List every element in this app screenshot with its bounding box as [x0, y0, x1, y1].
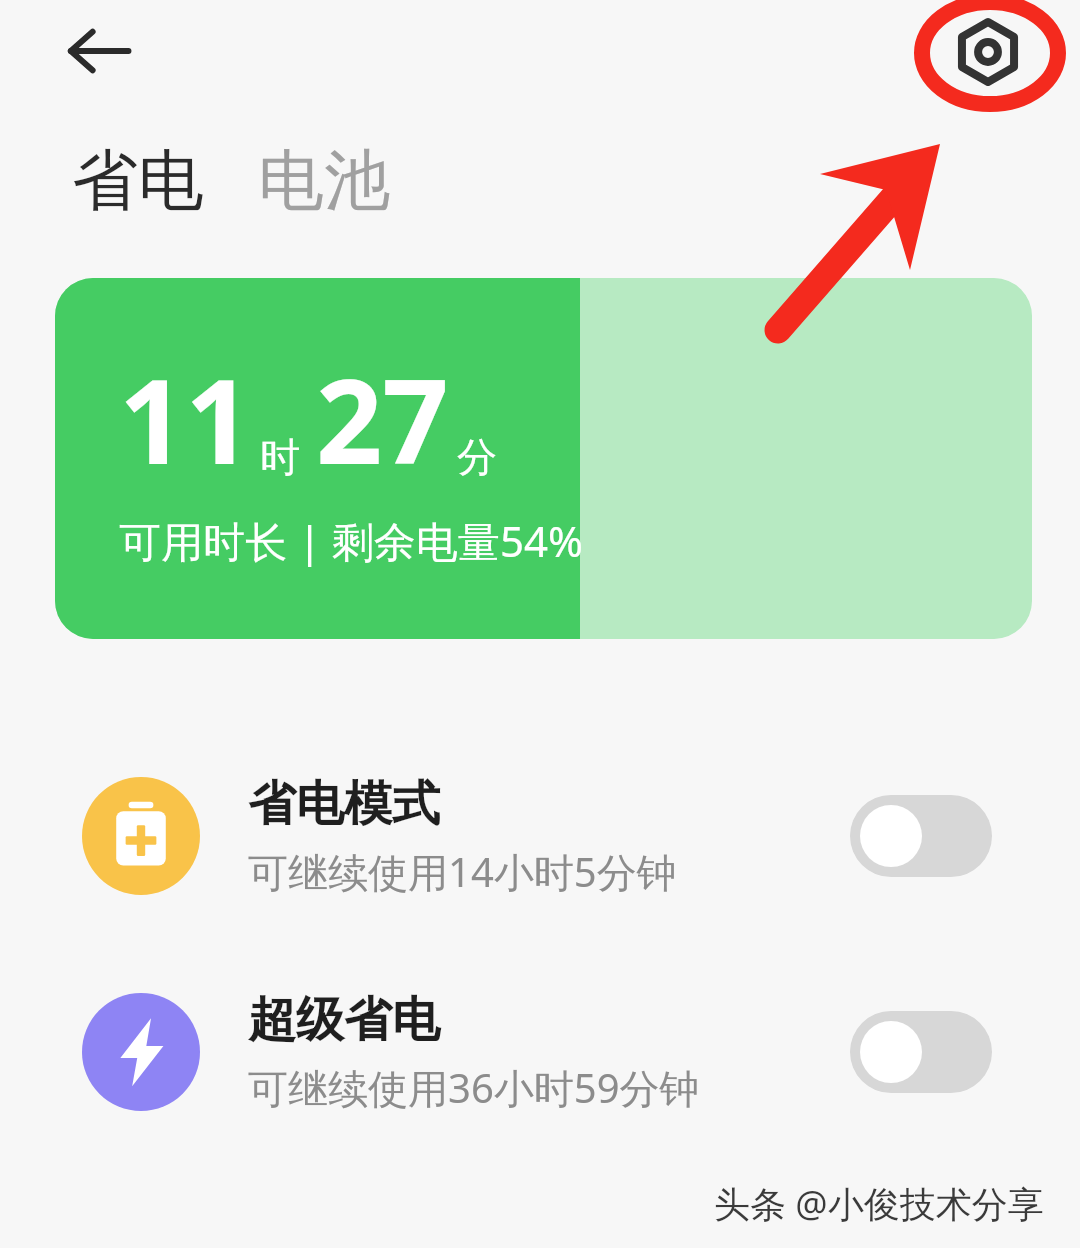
button[interactable]: 11	[55, 278, 1032, 639]
staticText: 11	[119, 340, 252, 498]
button[interactable]: 省电模式 toggle	[850, 795, 992, 877]
staticText: 分	[457, 432, 497, 482]
staticText: 可用时长 | 剩余电量54%	[119, 512, 583, 569]
button[interactable]: 超级省电 toggle	[850, 1011, 992, 1093]
staticText: 省电模式	[248, 774, 440, 834]
button[interactable]: Settings	[944, 8, 1032, 96]
button[interactable]: 电池	[254, 135, 394, 226]
staticText: 27	[316, 340, 449, 498]
staticText: 电池	[258, 139, 390, 222]
staticText: 省电	[72, 139, 204, 222]
staticText: 时	[260, 432, 300, 482]
staticText: 头条 @小俊技术分享	[714, 1179, 1044, 1228]
button[interactable]: 超级省电	[0, 973, 1080, 1131]
button[interactable]: Back	[58, 10, 140, 92]
staticText: 可继续使用36小时59分钟	[248, 1060, 700, 1115]
button[interactable]: 省电模式	[0, 757, 1080, 915]
button[interactable]: 省电	[68, 135, 208, 226]
staticText: 可继续使用14小时5分钟	[248, 844, 677, 899]
staticText: 超级省电	[248, 990, 440, 1050]
